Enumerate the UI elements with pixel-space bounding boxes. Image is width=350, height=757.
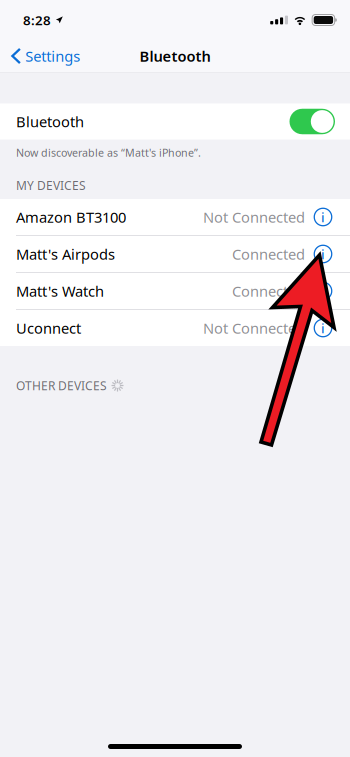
staticText: Uconnect	[16, 318, 81, 338]
button[interactable]: Settings	[0, 40, 88, 72]
staticText: MY DEVICES	[16, 177, 86, 193]
staticText: Not Connected	[203, 318, 305, 338]
staticText: Connected	[232, 281, 305, 301]
staticText: i	[321, 208, 325, 226]
staticText: i	[321, 319, 325, 337]
staticText: Matt's Airpods	[16, 244, 115, 264]
staticText: OTHER DEVICES	[16, 377, 107, 393]
button[interactable]: Matt's Airpods	[0, 236, 350, 272]
button[interactable]: Amazon BT3100	[0, 199, 350, 235]
staticText: Now discoverable as “Matt's iPhone”.	[16, 145, 201, 160]
staticText: Matt's Watch	[16, 281, 104, 301]
staticText: i	[321, 282, 325, 300]
staticText: Not Connected	[203, 207, 305, 227]
staticText: Amazon BT3100	[16, 207, 126, 227]
button[interactable]: Matt's Watch	[0, 273, 350, 309]
staticText: i	[321, 245, 325, 263]
button[interactable]: Uconnect	[0, 310, 350, 346]
staticText: Bluetooth	[16, 112, 84, 131]
staticText: Connected	[232, 244, 305, 264]
button[interactable]	[289, 109, 335, 134]
staticText: 8:28	[23, 11, 51, 29]
staticText: Settings	[25, 46, 80, 66]
staticText: Bluetooth	[139, 46, 210, 66]
